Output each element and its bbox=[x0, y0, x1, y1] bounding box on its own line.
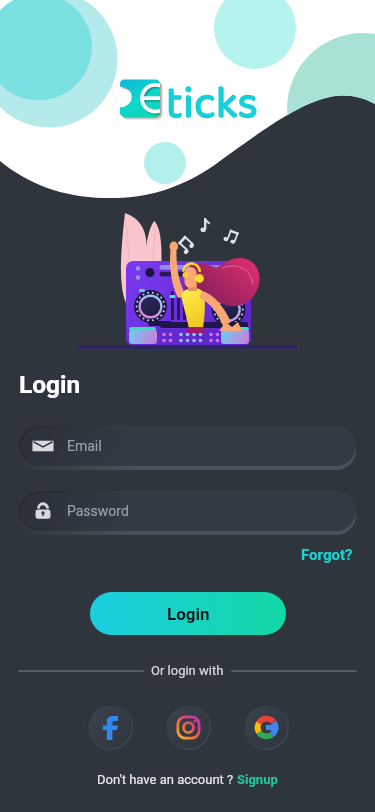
staticText: Or login with bbox=[151, 663, 224, 678]
staticText: ticks bbox=[166, 68, 258, 141]
button[interactable]: Signup bbox=[237, 772, 278, 787]
button[interactable]: Password bbox=[19, 491, 356, 535]
staticText: Password bbox=[67, 503, 129, 519]
staticText: Login bbox=[19, 370, 81, 399]
staticText: Login bbox=[167, 604, 210, 624]
button[interactable]: Email bbox=[19, 426, 356, 470]
button[interactable]: Sign in with Instagram bbox=[165, 704, 211, 750]
staticText: Don't have an account ? bbox=[97, 772, 237, 787]
button[interactable]: Sign in with Google bbox=[243, 704, 289, 750]
staticText: Email bbox=[67, 438, 102, 454]
button[interactable]: Login bbox=[90, 592, 286, 635]
button[interactable]: Forgot? bbox=[299, 544, 355, 566]
button[interactable]: Sign in with Facebook bbox=[87, 704, 133, 750]
